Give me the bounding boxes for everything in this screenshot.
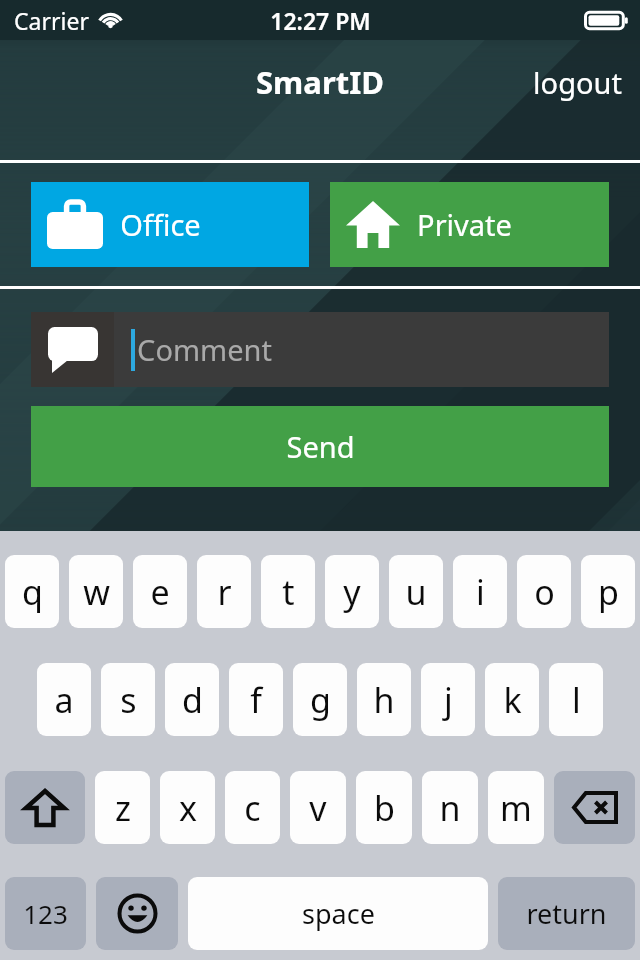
staticText: f — [250, 677, 262, 723]
staticText: Office — [120, 205, 201, 244]
button[interactable]: Office — [31, 182, 309, 267]
staticText: l — [572, 677, 581, 723]
button[interactable]: a — [37, 663, 91, 736]
button[interactable]: y — [325, 555, 379, 628]
staticText: d — [182, 677, 203, 723]
staticText: o — [534, 569, 555, 615]
staticText: 12:27 PM — [270, 5, 371, 36]
button[interactable]: p — [581, 555, 635, 628]
staticText: y — [343, 569, 361, 615]
button[interactable]: Comment — [31, 312, 609, 387]
staticText: v — [309, 785, 327, 831]
button[interactable]: k — [485, 663, 539, 736]
button[interactable]: g — [293, 663, 347, 736]
staticText: q — [22, 569, 43, 615]
staticText: r — [217, 569, 232, 615]
staticText: x — [179, 785, 197, 831]
staticText: return — [526, 895, 607, 932]
button[interactable]: t — [261, 555, 315, 628]
staticText: p — [598, 569, 619, 615]
staticText: k — [503, 677, 522, 723]
button[interactable]: z — [95, 771, 150, 844]
button[interactable]: h — [357, 663, 411, 736]
button[interactable]: Emoji — [96, 877, 178, 950]
staticText: h — [373, 677, 395, 723]
staticText: w — [83, 569, 110, 615]
staticText: space — [302, 895, 375, 932]
staticText: b — [374, 785, 395, 831]
button[interactable]: Backspace — [554, 771, 635, 844]
button[interactable]: Send — [31, 406, 609, 487]
button[interactable]: d — [165, 663, 219, 736]
button[interactable]: b — [356, 771, 412, 844]
button[interactable]: u — [389, 555, 443, 628]
staticText: e — [150, 569, 170, 615]
button[interactable]: i — [453, 555, 507, 628]
button[interactable]: q — [5, 555, 59, 628]
staticText: n — [439, 785, 461, 831]
staticText: c — [244, 785, 261, 831]
button[interactable]: c — [225, 771, 280, 844]
button[interactable]: e — [133, 555, 187, 628]
button[interactable]: s — [101, 663, 155, 736]
button[interactable]: f — [229, 663, 283, 736]
staticText: Comment — [137, 330, 272, 369]
staticText: m — [500, 785, 532, 831]
button[interactable]: n — [422, 771, 478, 844]
staticText: a — [54, 677, 74, 723]
staticText: s — [120, 677, 137, 723]
button[interactable]: space — [188, 877, 488, 950]
button[interactable]: r — [197, 555, 251, 628]
staticText: 123 — [23, 896, 68, 931]
button[interactable]: logout — [515, 51, 640, 114]
staticText: g — [310, 677, 331, 723]
staticText: i — [476, 569, 485, 615]
button[interactable]: l — [549, 663, 603, 736]
staticText: logout — [533, 63, 622, 102]
button[interactable]: v — [290, 771, 346, 844]
button[interactable]: w — [69, 555, 123, 628]
button[interactable]: 123 — [5, 877, 86, 950]
staticText: Private — [417, 205, 512, 244]
button[interactable]: Shift — [5, 771, 85, 844]
button[interactable]: j — [421, 663, 475, 736]
staticText: Carrier — [14, 5, 89, 36]
staticText: t — [282, 569, 295, 615]
button[interactable]: return — [498, 877, 635, 950]
staticText: u — [405, 569, 427, 615]
staticText: Send — [286, 427, 355, 466]
button[interactable]: m — [488, 771, 544, 844]
staticText: z — [115, 785, 131, 831]
button[interactable]: x — [160, 771, 215, 844]
staticText: j — [444, 677, 453, 723]
staticText: SmartID — [256, 61, 384, 103]
button[interactable]: Private — [330, 182, 609, 267]
button[interactable]: o — [517, 555, 571, 628]
